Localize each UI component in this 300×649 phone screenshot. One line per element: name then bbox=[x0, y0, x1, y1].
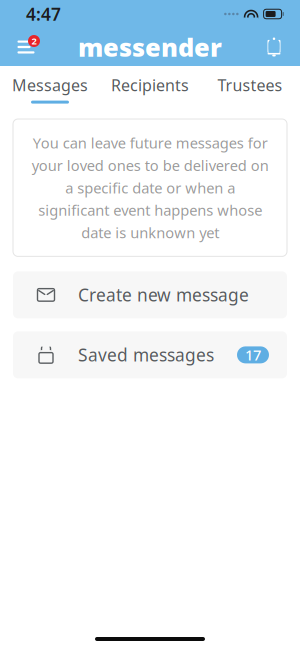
staticText: 4:47 bbox=[26, 2, 61, 25]
staticText: Messages bbox=[12, 74, 88, 96]
staticText: You can leave future messages for your l… bbox=[31, 133, 268, 242]
staticText: messender bbox=[78, 30, 222, 64]
staticText: 17 bbox=[245, 345, 261, 365]
button[interactable]: Messages bbox=[0, 64, 100, 110]
button[interactable]: Create new message bbox=[13, 271, 287, 318]
button[interactable]: Trustees bbox=[200, 64, 300, 110]
staticText: Recipients bbox=[111, 74, 189, 96]
button[interactable]: Menu bbox=[0, 28, 52, 66]
staticText: Trustees bbox=[217, 74, 282, 96]
button[interactable]: Saved messages bbox=[13, 331, 287, 378]
button[interactable]: Notifications bbox=[248, 28, 300, 66]
button[interactable]: Recipients bbox=[100, 64, 200, 110]
staticText: Create new message bbox=[78, 283, 249, 306]
staticText: 2 bbox=[31, 35, 36, 47]
staticText: Saved messages bbox=[78, 343, 214, 366]
